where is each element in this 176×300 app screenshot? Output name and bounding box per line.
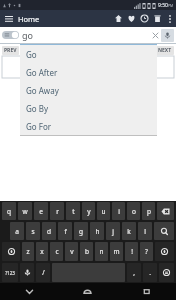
button[interactable]: e [34,202,48,220]
staticText: d [47,227,51,236]
staticText: x [40,247,44,256]
button[interactable]: d [42,222,56,240]
button[interactable]: Backspace [157,202,174,220]
staticText: t [72,207,75,216]
staticText: w [22,207,28,216]
button[interactable]: Toggle search mode [2,31,19,39]
staticText: , [133,268,135,277]
staticText: h [95,227,100,236]
button[interactable]: Recent apps [117,283,176,300]
button[interactable]: u [97,202,110,220]
staticText: PREV [4,47,17,54]
button[interactable]: PREV [2,46,19,55]
staticText: 9:50 [158,2,168,9]
staticText: / [42,268,45,277]
staticText: j [112,227,114,236]
button[interactable]: p [142,202,155,220]
staticText: Go For [26,121,52,132]
button[interactable]: Emoji [159,263,174,282]
button[interactable]: History [138,10,151,27]
staticText: b [85,247,89,256]
button[interactable]: Hide keyboard [0,283,58,300]
button[interactable]: h [90,222,104,240]
button[interactable]: k [122,222,136,240]
button[interactable]: . [143,263,157,282]
staticText: f [64,227,67,236]
button[interactable]: Voice input [20,263,34,282]
staticText: PM [168,3,174,8]
staticText: u [101,207,106,216]
staticText: o [132,207,136,216]
staticText: q [7,207,11,216]
staticText: v [70,247,74,256]
staticText: a [15,227,19,236]
button[interactable]: Open navigation drawer [0,10,17,27]
button[interactable]: Go By [20,99,157,117]
staticText: p [147,207,151,216]
button[interactable]: b [80,242,93,261]
staticText: Go By [26,103,49,114]
button[interactable]: v [65,242,78,261]
button[interactable]: o [127,202,140,220]
button[interactable]: Voice search [161,29,174,42]
button[interactable]: m [110,242,123,261]
button[interactable]: t [66,202,80,220]
button[interactable]: x [36,242,48,261]
staticText: go [22,29,33,41]
button[interactable]: g [74,222,88,240]
button[interactable]: Home [112,10,125,27]
button[interactable]: ? [140,242,153,261]
staticText: e [39,207,43,216]
staticText: r [56,207,59,216]
button[interactable]: Home [17,14,40,24]
button[interactable]: Search [154,222,174,240]
staticText: m [113,247,120,256]
staticText: Go Away [26,85,59,96]
button[interactable]: l [138,222,152,240]
staticText: NEXT [158,47,172,54]
staticText: ! [131,247,133,256]
staticText: k [127,227,131,236]
staticText: ? [145,247,148,256]
button[interactable]: Go After [20,63,157,81]
staticText: Go [26,49,37,60]
button[interactable]: Shift [155,242,174,261]
staticText: ?123 [5,270,15,276]
button[interactable]: Shift [2,242,20,261]
button[interactable]: n [95,242,108,261]
button[interactable]: NEXT [156,46,174,55]
staticText: l [144,227,146,236]
button[interactable]: Favorites [125,10,138,27]
button[interactable]: More options [164,10,175,27]
button[interactable]: Delete [151,10,164,27]
button[interactable]: Go For [20,117,157,135]
button[interactable]: j [106,222,120,240]
button[interactable]: Go [20,45,157,63]
button[interactable]: i [112,202,125,220]
button[interactable]: Go Away [20,81,157,99]
button[interactable]: s [26,222,40,240]
button[interactable]: a [10,222,24,240]
staticText: . [149,268,151,277]
button[interactable]: q [2,202,16,220]
staticText: n [99,247,104,256]
button[interactable]: ! [125,242,138,261]
button[interactable]: y [82,202,95,220]
button[interactable]: , [127,263,141,282]
staticText: s [31,227,35,236]
staticText: g [79,227,83,236]
button[interactable]: f [58,222,72,240]
button[interactable]: r [50,202,64,220]
staticText: c [55,247,59,256]
button[interactable]: Clear text [150,30,160,40]
button[interactable]: Home [58,283,117,300]
staticText: y [87,207,91,216]
button[interactable]: c [50,242,63,261]
button[interactable]: / [36,263,50,282]
staticText: z [26,247,30,256]
button[interactable]: w [18,202,32,220]
button[interactable]: z [22,242,34,261]
staticText: i [118,207,120,216]
button[interactable]: ?123 [2,263,18,282]
